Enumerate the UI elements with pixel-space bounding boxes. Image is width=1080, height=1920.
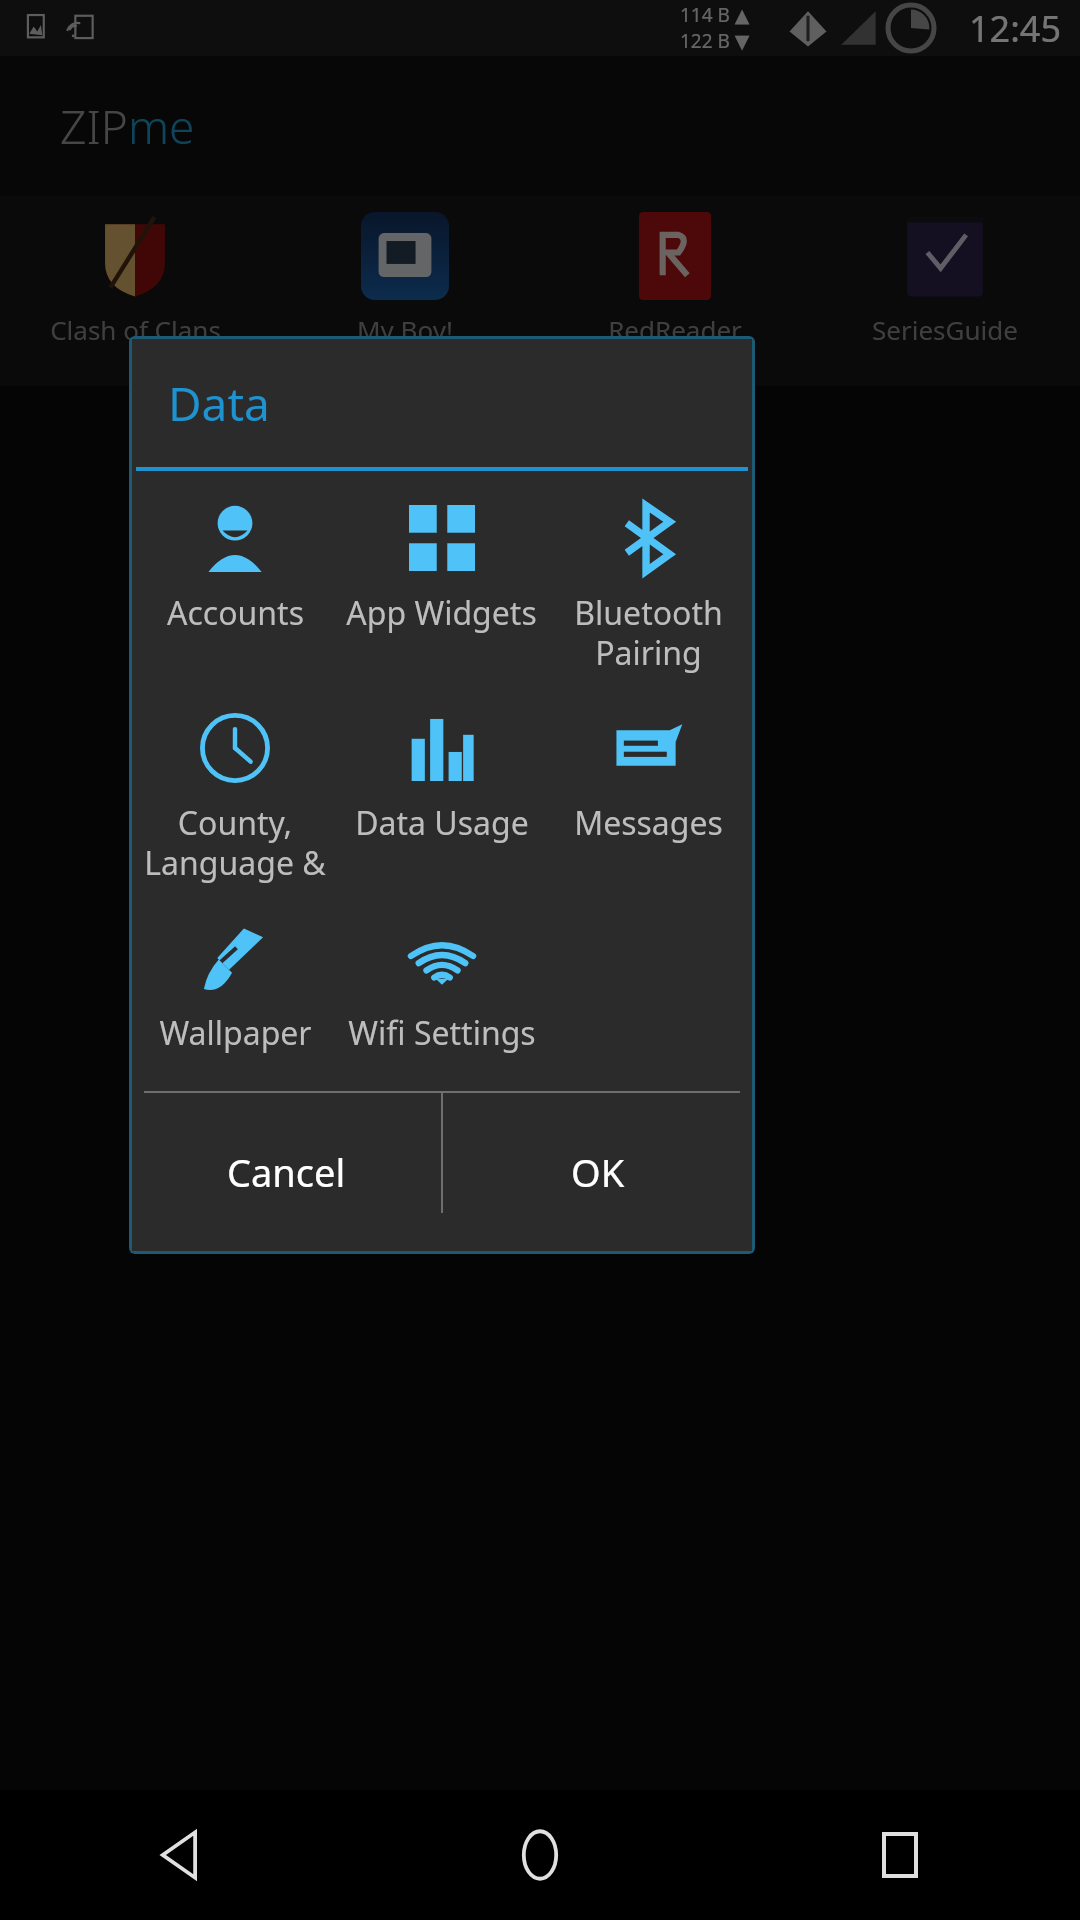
button[interactable]: County, Language & [132, 703, 338, 891]
staticText: me [128, 95, 195, 158]
staticText: 12:45 [969, 4, 1062, 53]
button[interactable]: Messages [545, 703, 752, 851]
staticText: Wallpaper [159, 1011, 312, 1055]
staticText: Clash of Clans [50, 312, 221, 347]
button[interactable]: Add [810, 1805, 920, 1915]
button[interactable]: RedReader Beta [540, 196, 810, 386]
staticText: App Widgets [346, 591, 537, 635]
staticText: Bluetooth Pairing [574, 591, 723, 675]
button[interactable]: Recent apps [720, 1790, 1080, 1920]
button[interactable]: Wifi Settings [338, 913, 545, 1061]
button[interactable]: CREATE [0, 1800, 770, 1920]
button[interactable]: SeriesGuide [810, 196, 1080, 386]
button[interactable]: Cancel [132, 1093, 441, 1251]
staticText: ZIP [60, 95, 128, 158]
staticText: Messages [574, 801, 723, 845]
staticText: RedReader Beta [608, 312, 742, 382]
staticText: Data Usage [355, 801, 529, 845]
button[interactable]: Accounts [132, 493, 338, 641]
staticText: SeriesGuide [872, 312, 1018, 347]
staticText: 114 B ▲ [680, 2, 750, 28]
staticText: Data [168, 372, 270, 435]
button[interactable]: OK [443, 1093, 752, 1251]
button[interactable]: My Boy! [270, 196, 540, 386]
staticText: OK [571, 1146, 625, 1198]
button[interactable]: Home [360, 1790, 720, 1920]
staticText: Cancel [227, 1146, 346, 1198]
staticText: My Boy! [357, 312, 453, 347]
button[interactable]: Clash of Clans [0, 196, 270, 386]
staticText: Wifi Settings [348, 1011, 536, 1055]
button[interactable]: Back [0, 1790, 360, 1920]
staticText: 122 B ▼ [680, 28, 750, 54]
button[interactable]: Wallpaper [132, 913, 338, 1061]
staticText: County, Language & [144, 801, 326, 885]
button[interactable]: Data Usage [338, 703, 545, 851]
button[interactable]: App Widgets [338, 493, 545, 641]
staticText: Accounts [167, 591, 304, 635]
button[interactable]: Bluetooth Pairing [545, 493, 752, 681]
